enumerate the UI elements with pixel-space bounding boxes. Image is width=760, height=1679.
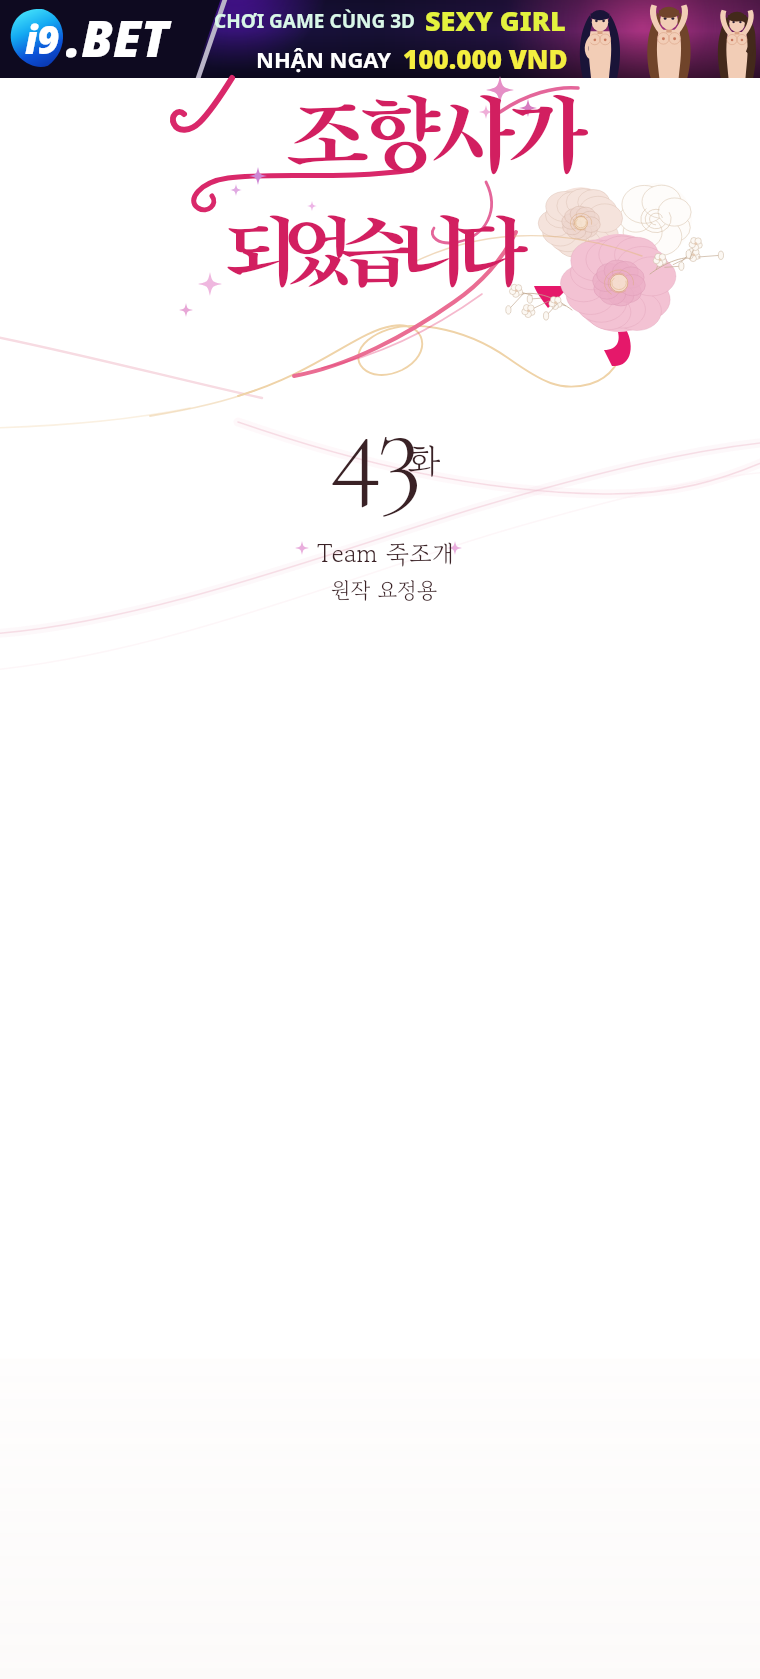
staticText: NHẬN NGAY [256, 44, 403, 74]
staticText: SEXY GIRL [425, 2, 566, 39]
staticText: 되었습니다 [226, 211, 511, 295]
staticText: i9 [25, 13, 60, 65]
staticText: 100.000 VND [403, 41, 568, 76]
staticText: 조향사가 [288, 90, 580, 182]
button[interactable]: Advertisement banner i9.BET [0, 0, 760, 78]
staticText: CHƠI GAME CÙNG 3D [214, 8, 425, 34]
staticText: 43 [330, 378, 419, 518]
staticText: 화 [407, 434, 441, 486]
staticText: Team 죽조개 [317, 535, 454, 571]
staticText: .BET [66, 4, 169, 72]
staticText: 원작 요정용 [331, 573, 438, 605]
